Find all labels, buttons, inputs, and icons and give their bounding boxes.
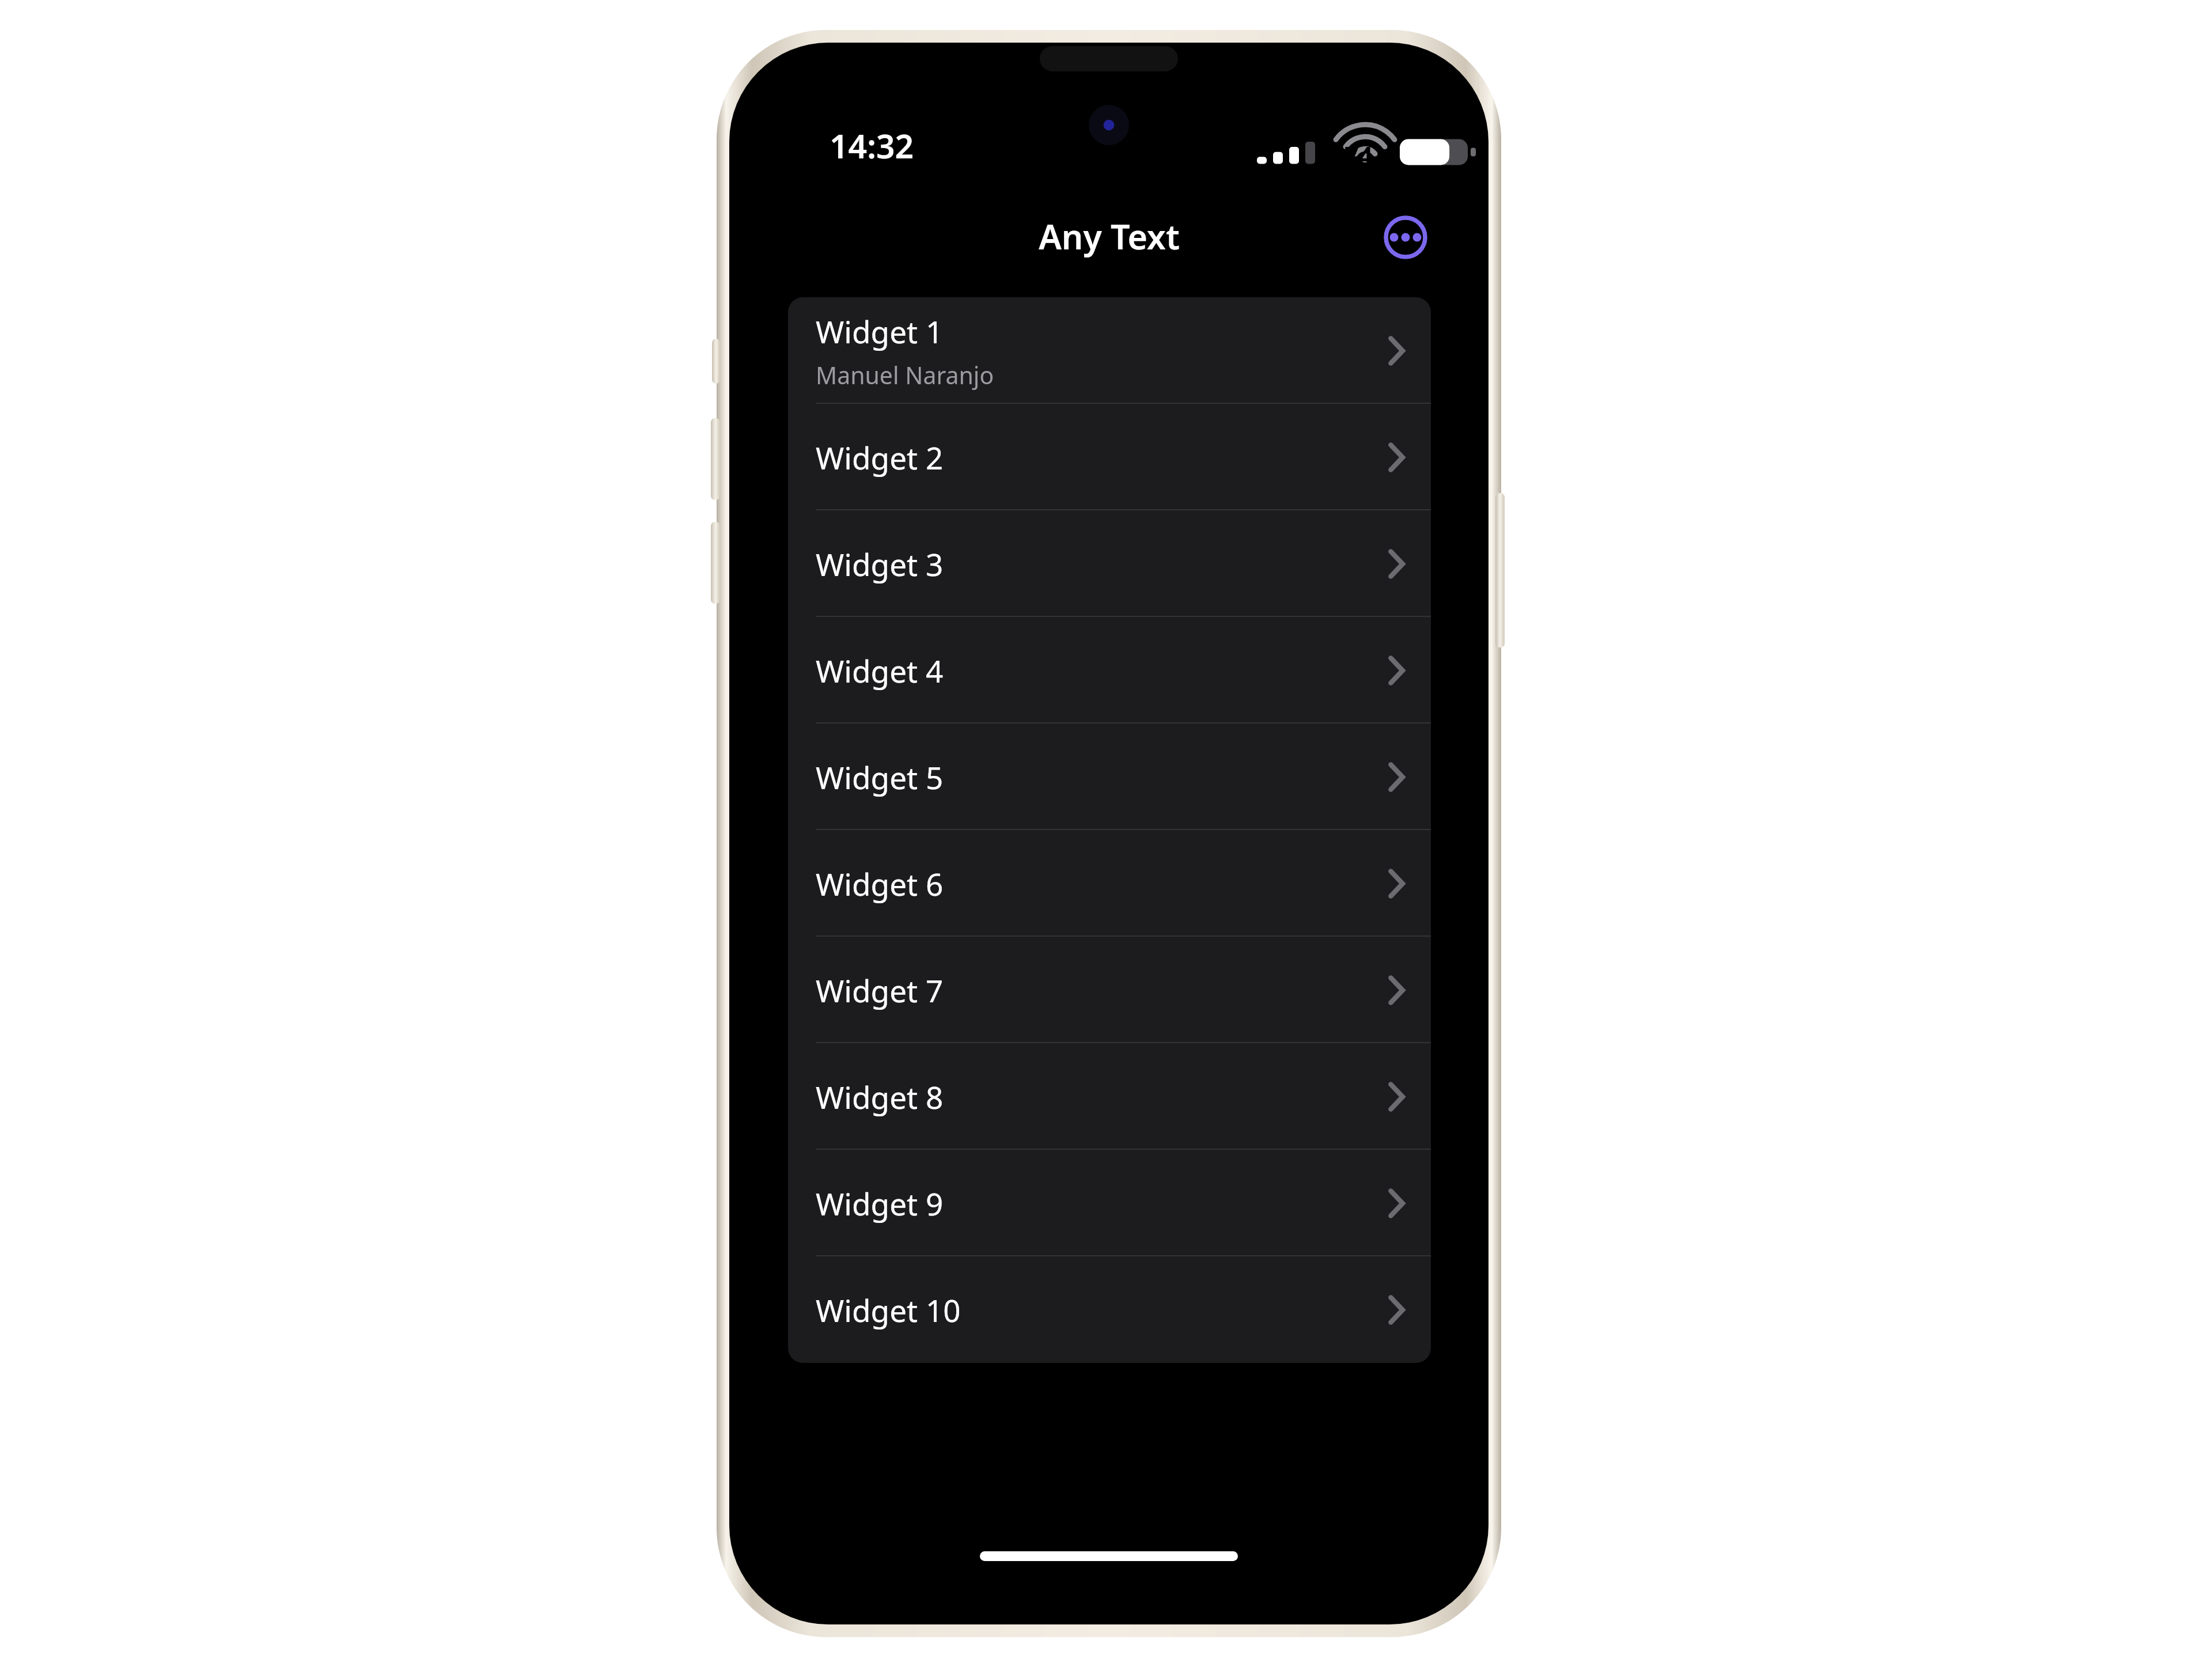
button[interactable]: Widget 8 xyxy=(788,1043,1431,1150)
staticText: Widget 6 xyxy=(816,863,944,904)
button[interactable]: Widget 4 xyxy=(788,617,1431,724)
staticText: Widget 5 xyxy=(816,756,944,798)
staticText: Widget 2 xyxy=(816,437,944,478)
staticText: Widget 1 xyxy=(816,310,944,352)
button[interactable]: Widget 5 xyxy=(788,724,1431,830)
button[interactable]: Widget 3 xyxy=(788,510,1431,617)
staticText: Widget 7 xyxy=(816,969,944,1011)
staticText: 74 xyxy=(1344,138,1373,172)
staticText: Manuel Naranjo xyxy=(816,359,994,391)
button[interactable]: Widget 6 xyxy=(788,830,1431,937)
staticText: Widget 9 xyxy=(816,1183,944,1224)
staticText: Widget 10 xyxy=(816,1289,961,1331)
button[interactable]: Widget 2 xyxy=(788,404,1431,510)
button[interactable]: Widget 7 xyxy=(788,937,1431,1043)
staticText: Any Text xyxy=(1039,213,1180,259)
button[interactable]: More options xyxy=(1376,207,1435,267)
staticText: Widget 4 xyxy=(816,650,944,691)
staticText: Widget 8 xyxy=(816,1076,944,1118)
button[interactable]: Widget 1 xyxy=(788,297,1431,404)
button[interactable]: Widget 9 xyxy=(788,1150,1431,1256)
staticText: Widget 3 xyxy=(816,543,944,585)
staticText: 14:32 xyxy=(829,123,914,168)
button[interactable]: Widget 10 xyxy=(788,1256,1431,1363)
